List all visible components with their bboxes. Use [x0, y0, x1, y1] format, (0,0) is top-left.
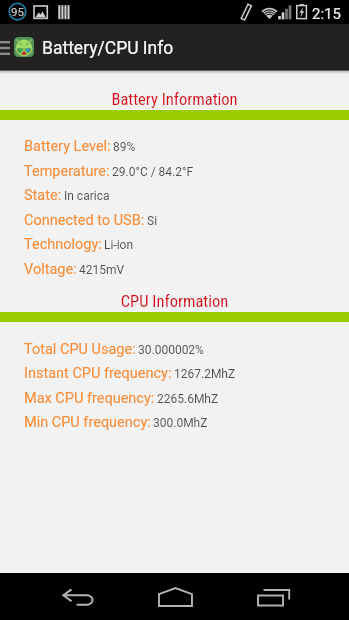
staticText: Voltage: — [24, 261, 77, 278]
staticText: 300.0MhZ — [153, 416, 208, 430]
staticText: 2:15 — [312, 5, 341, 23]
staticText: Technology: — [24, 236, 102, 253]
button[interactable]: Recent apps — [226, 573, 322, 620]
staticText: 4215mV — [79, 263, 125, 277]
staticText: 29.0°C / 84.2°F — [112, 165, 194, 179]
staticText: Battery Information — [0, 90, 349, 109]
button[interactable]: Navigate up — [0, 24, 12, 69]
staticText: 2265.6MhZ — [157, 392, 219, 406]
staticText: Temperature: — [24, 163, 110, 180]
staticText: 30.000002% — [138, 343, 204, 357]
staticText: Connected to USB: — [24, 212, 145, 229]
staticText: 1267.2MhZ — [174, 367, 236, 381]
staticText: Total CPU Usage: — [24, 341, 136, 358]
staticText: Max CPU frequency: — [24, 390, 155, 407]
staticText: Battery/CPU Info — [42, 38, 174, 59]
staticText: Battery Level: — [24, 138, 111, 155]
staticText: Instant CPU frequency: — [24, 365, 172, 382]
staticText: Min CPU frequency: — [24, 414, 151, 431]
staticText: In carica — [64, 189, 110, 203]
staticText: Li-ion — [104, 238, 134, 252]
staticText: 89% — [113, 140, 136, 154]
staticText: CPU Information — [0, 292, 349, 311]
staticText: Si — [147, 214, 158, 228]
button[interactable]: Home — [128, 573, 224, 620]
staticText: 95 — [11, 5, 24, 18]
button[interactable]: Back — [31, 573, 127, 620]
staticText: State: — [24, 187, 62, 204]
